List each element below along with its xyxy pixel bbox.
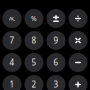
button[interactable]: All Clear (2, 9, 21, 28)
button[interactable]: Subtract (68, 53, 87, 72)
button[interactable]: Divide (68, 9, 87, 28)
button[interactable]: 6 (46, 53, 65, 72)
staticText: AC (9, 15, 15, 22)
staticText: 1 (9, 79, 14, 90)
button[interactable]: 5 (24, 53, 43, 72)
button[interactable]: 3 (46, 75, 65, 90)
staticText: 7 (9, 35, 14, 46)
button[interactable]: Add (68, 75, 87, 90)
button[interactable]: 4 (2, 53, 21, 72)
button[interactable]: Plus Minus (46, 9, 65, 28)
staticText: 9 (53, 35, 58, 46)
button[interactable]: 2 (24, 75, 43, 90)
staticText: % (31, 14, 37, 23)
button[interactable]: 9 (46, 31, 65, 50)
button[interactable]: 1 (2, 75, 21, 90)
button[interactable]: 7 (2, 31, 21, 50)
button[interactable]: Percent (24, 9, 43, 28)
staticText: 6 (53, 57, 58, 68)
staticText: 3 (53, 79, 58, 90)
button[interactable]: 8 (24, 31, 43, 50)
staticText: 8 (31, 35, 36, 46)
staticText: 2 (31, 79, 36, 90)
staticText: 4 (9, 57, 14, 68)
staticText: 5 (31, 57, 36, 68)
button[interactable]: Multiply (68, 31, 87, 50)
